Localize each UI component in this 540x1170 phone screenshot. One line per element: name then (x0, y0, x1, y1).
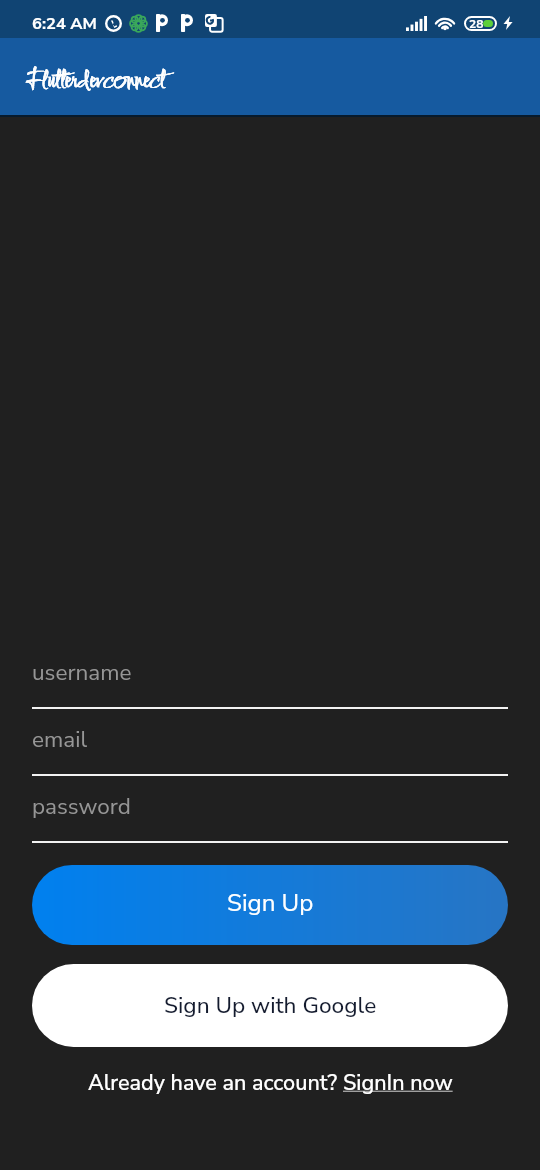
staticText: email (32, 724, 88, 755)
staticText: password (32, 791, 131, 822)
staticText: Sign Up with Google (164, 990, 377, 1021)
staticText: SignIn now (343, 1068, 453, 1097)
staticText: 6:24 AM (32, 12, 97, 35)
staticText: Flutterdevconnect (26, 64, 165, 101)
staticText: Flutterdevconnect (26, 64, 165, 101)
button[interactable]: Sign Up with Google (32, 964, 508, 1047)
staticText: username (32, 657, 132, 688)
staticText: Already have an account? (88, 1068, 343, 1097)
button[interactable]: SignIn now (343, 1068, 453, 1097)
button[interactable]: Sign Up (32, 865, 508, 945)
staticText: Sign Up (227, 887, 314, 920)
staticText: 28 (469, 16, 484, 31)
